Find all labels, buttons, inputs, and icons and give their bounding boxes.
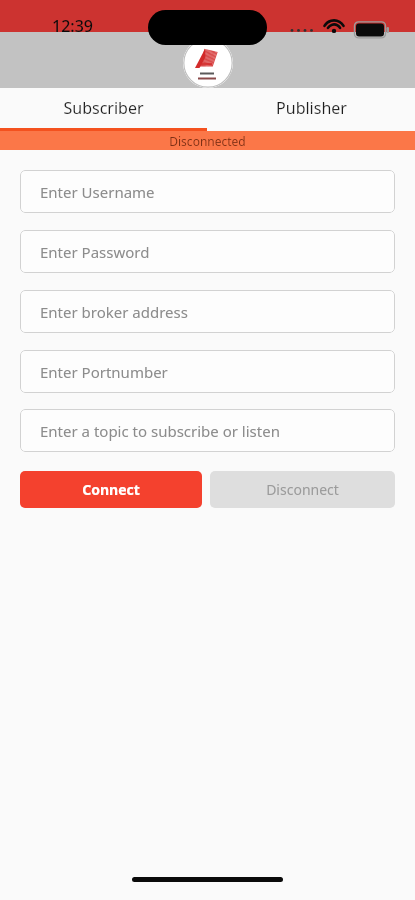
staticText: Connect (82, 480, 140, 499)
staticText: Publisher (276, 97, 347, 119)
button[interactable]: Subscriber (0, 88, 207, 128)
staticText: Disconnected (169, 133, 246, 149)
staticText: 12:39 (52, 15, 93, 37)
button[interactable]: Enter broker address (20, 290, 395, 333)
button[interactable]: Publisher (207, 88, 415, 128)
staticText: Enter broker address (40, 302, 188, 322)
staticText: Subscriber (63, 97, 144, 119)
button[interactable]: Connect (20, 471, 202, 508)
staticText: Enter Username (40, 182, 155, 202)
button[interactable]: Enter Password (20, 230, 395, 273)
button[interactable]: Disconnect (210, 471, 395, 508)
button[interactable]: Enter Portnumber (20, 350, 395, 393)
staticText: Enter Password (40, 242, 150, 262)
button[interactable]: Enter Username (20, 170, 395, 213)
staticText: Disconnect (266, 480, 339, 499)
staticText: Enter a topic to subscribe or listen (40, 421, 280, 441)
button[interactable]: Enter a topic to subscribe or listen (20, 409, 395, 452)
staticText: Enter Portnumber (40, 362, 168, 382)
other: Home indicator (132, 877, 283, 882)
